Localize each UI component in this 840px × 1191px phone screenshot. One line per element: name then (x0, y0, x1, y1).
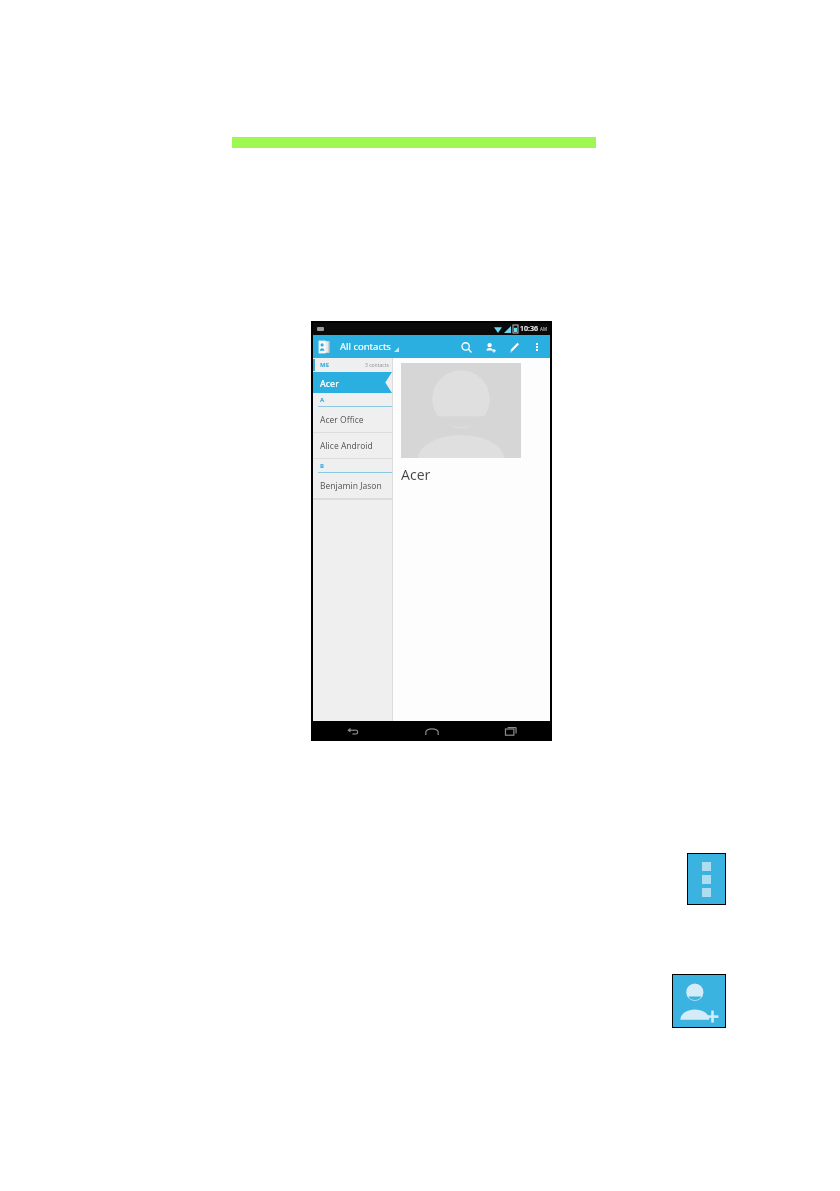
staticText: Alice Android (320, 440, 373, 452)
button[interactable]: Back (313, 721, 392, 741)
staticText: 10:36 (520, 324, 538, 334)
staticText: AM (540, 326, 547, 332)
staticText: Benjamin Jason (320, 480, 382, 492)
button[interactable]: Add contact (480, 337, 500, 357)
staticText: All contacts (340, 340, 391, 353)
staticText: Acer (320, 377, 339, 389)
staticText: ME (320, 361, 330, 369)
button[interactable]: Search (456, 337, 476, 357)
button[interactable]: Recent apps (471, 721, 550, 741)
button[interactable]: More options (688, 854, 725, 904)
button[interactable]: Alice Android (313, 433, 392, 459)
button[interactable]: Contacts (317, 339, 333, 355)
staticText: Acer (401, 465, 431, 484)
button[interactable]: Benjamin Jason (313, 473, 392, 499)
button[interactable]: More options (528, 338, 546, 356)
button[interactable]: All contacts (340, 340, 399, 353)
staticText: Acer Office (320, 414, 364, 426)
button[interactable]: Add contact (673, 975, 725, 1027)
staticText: B (320, 462, 324, 470)
button[interactable]: Acer (313, 372, 392, 393)
button[interactable]: Acer Office (313, 407, 392, 433)
button[interactable]: Home (392, 721, 471, 741)
button[interactable]: Edit (504, 337, 524, 357)
staticText: 3 contacts (365, 362, 389, 369)
button[interactable]: Contact photo (401, 363, 521, 458)
staticText: A (320, 396, 325, 404)
